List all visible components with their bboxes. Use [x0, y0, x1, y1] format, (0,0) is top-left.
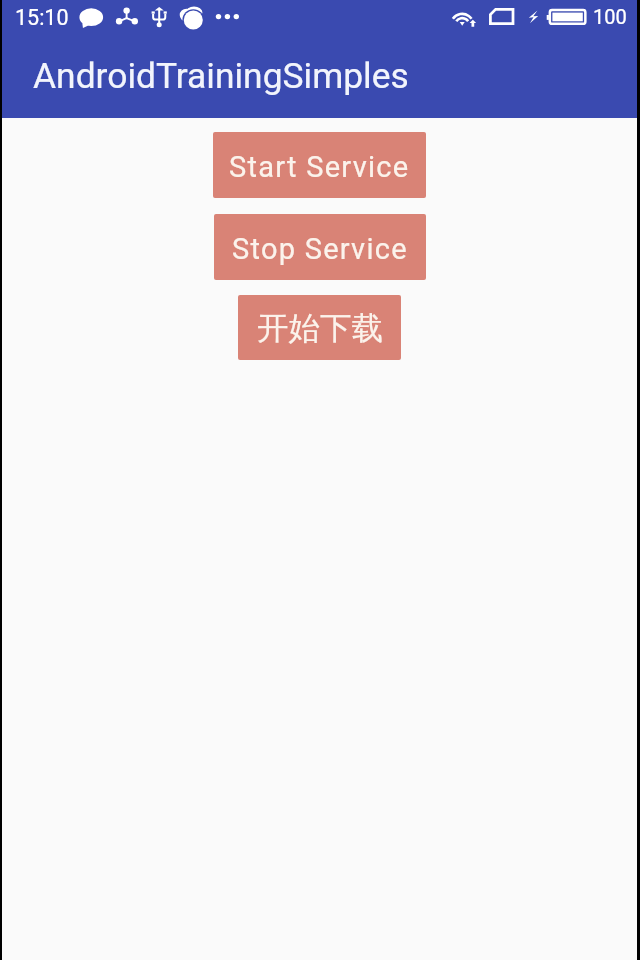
staticText: Stop Service — [232, 232, 408, 266]
staticText: Start Service — [229, 150, 410, 184]
staticText: AndroidTrainingSimples — [33, 55, 409, 96]
other: Status bar icons — [2, 0, 637, 44]
staticText: 100 — [593, 5, 627, 28]
button[interactable]: 开始下载 — [238, 295, 401, 360]
staticText: 15:10 — [15, 5, 69, 30]
button[interactable]: Stop Service — [214, 214, 426, 280]
staticText: 开始下载 — [257, 309, 383, 349]
button[interactable]: Start Service — [213, 132, 426, 198]
